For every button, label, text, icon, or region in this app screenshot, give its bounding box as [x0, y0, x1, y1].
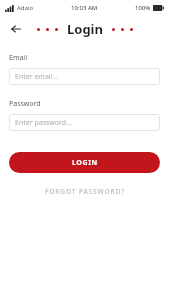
- button[interactable]: Back: [8, 21, 24, 37]
- staticText: Login: [67, 20, 103, 38]
- button[interactable]: LOGIN: [9, 152, 160, 173]
- button[interactable]: Enter password...: [9, 114, 160, 131]
- staticText: Enter password...: [15, 118, 72, 128]
- staticText: 10:03 AM: [71, 4, 98, 12]
- staticText: 100%: [135, 4, 151, 12]
- staticText: FORGOT PASSWORD?: [45, 187, 125, 196]
- staticText: LOGIN: [72, 158, 98, 168]
- staticText: Adalo: [17, 4, 34, 12]
- staticText: Email: [9, 53, 27, 63]
- staticText: Enter email...: [15, 72, 59, 82]
- button[interactable]: Enter email...: [9, 68, 160, 85]
- button[interactable]: FORGOT PASSWORD?: [9, 185, 160, 197]
- staticText: Password: [9, 99, 41, 109]
